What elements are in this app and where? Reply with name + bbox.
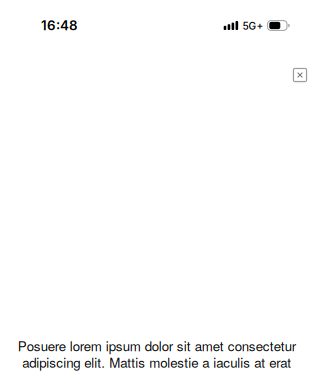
button[interactable]: Close (293, 68, 306, 81)
staticText: 16:48 (41, 17, 78, 33)
staticText: 5G+ (242, 20, 263, 32)
staticText: Posuere lorem ipsum dolor sit amet conse… (17, 336, 295, 371)
